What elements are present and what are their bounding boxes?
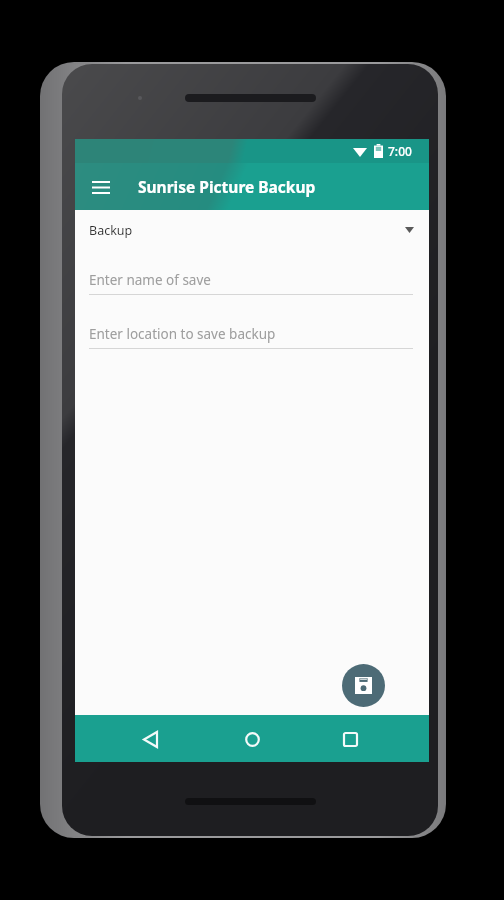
staticText: 7:00 [388, 143, 412, 159]
button[interactable]: Save backup [342, 664, 385, 707]
button[interactable]: Recent apps [337, 726, 363, 752]
staticText: Enter location to save backup [89, 325, 276, 343]
staticText: Sunrise Picture Backup [138, 176, 316, 197]
button[interactable]: Enter location to save backup [89, 320, 413, 350]
staticText: Backup [89, 222, 133, 239]
button[interactable]: Enter name of save [89, 266, 413, 296]
button[interactable]: Open navigation drawer [89, 175, 113, 199]
button[interactable]: Home [239, 726, 265, 752]
staticText: Enter name of save [89, 271, 211, 289]
button[interactable]: Backup [83, 213, 421, 247]
button[interactable]: Back [137, 726, 163, 752]
